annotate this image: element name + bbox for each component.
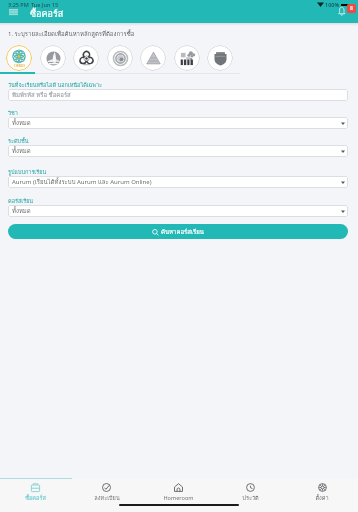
button[interactable]: พิมพ์รหัส หรือ ชื่อคอร์ส bbox=[8, 89, 348, 101]
staticText: รูปแบบการเรียน bbox=[8, 168, 47, 177]
staticText: ทั้งหมด bbox=[12, 118, 31, 128]
button[interactable]: Social studies bbox=[136, 43, 170, 73]
button[interactable]: ทั้งหมด bbox=[8, 145, 348, 157]
button[interactable]: English bbox=[203, 43, 237, 73]
button[interactable]: Thai bbox=[170, 43, 204, 73]
staticText: Tue Jun 15 bbox=[31, 1, 59, 8]
button[interactable]: Open navigation menu bbox=[8, 8, 19, 15]
staticText: ทั้งหมด bbox=[12, 146, 31, 156]
staticText: พิมพ์รหัส หรือ ชื่อคอร์ส bbox=[12, 90, 71, 100]
staticText: คอร์สเรียน bbox=[8, 197, 34, 206]
staticText: ซื้อคอร์ส bbox=[30, 7, 64, 21]
staticText: 100% bbox=[325, 1, 340, 8]
staticText: CHEMOS bbox=[14, 64, 25, 68]
staticText: วันที่จะเรียนหรือไอดี นอกเหนือได้เฉพาะ bbox=[8, 81, 103, 90]
staticText: 1. ระบุรายละเอียดเพื่อค้นหาหลักสูตรที่ต้… bbox=[8, 29, 135, 39]
staticText: ประวัติ bbox=[242, 494, 259, 503]
staticText: ตั้งค่า bbox=[315, 494, 329, 503]
button[interactable]: ทั้งหมด bbox=[8, 205, 348, 217]
staticText: ทั้งหมด bbox=[12, 206, 31, 216]
staticText: ซื้อคอร์ส bbox=[25, 494, 46, 503]
staticText: 8 bbox=[350, 5, 353, 12]
staticText: Homeroom bbox=[163, 494, 194, 502]
button[interactable]: ค้นหาคอร์สเรียน bbox=[8, 224, 348, 239]
staticText: 3:25 PM bbox=[8, 1, 29, 8]
button[interactable]: ลงทะเบียน bbox=[71, 481, 142, 503]
staticText: วิชา bbox=[8, 109, 18, 118]
button[interactable]: CHEMOS bbox=[2, 43, 36, 73]
button[interactable]: Physics bbox=[36, 43, 70, 73]
staticText: ระดับชั้น bbox=[8, 137, 29, 146]
button[interactable]: Aurum (เรียนได้ทั้งระบบ Aurum และ Aurum … bbox=[8, 176, 348, 188]
staticText: ลงทะเบียน bbox=[94, 494, 120, 503]
button[interactable]: ตั้งค่า bbox=[286, 481, 358, 503]
button[interactable]: Notifications bbox=[338, 6, 348, 16]
staticText: Aurum (เรียนได้ทั้งระบบ Aurum และ Aurum … bbox=[12, 177, 152, 187]
button[interactable]: ซื้อคอร์ส bbox=[0, 481, 71, 503]
button[interactable]: Mathematics bbox=[103, 43, 137, 73]
button[interactable]: ประวัติ bbox=[214, 481, 286, 503]
staticText: ค้นหาคอร์สเรียน bbox=[161, 227, 204, 237]
button[interactable]: Biology bbox=[69, 43, 103, 73]
button[interactable]: Homeroom bbox=[142, 481, 214, 503]
button[interactable]: ทั้งหมด bbox=[8, 117, 348, 129]
